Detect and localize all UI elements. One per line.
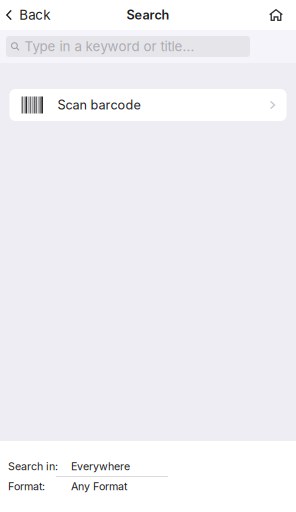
button[interactable]: Home (257, 0, 296, 30)
button[interactable]: Type in a keyword or title... (6, 36, 250, 57)
staticText: Search (126, 7, 169, 23)
staticText: Everywhere (71, 460, 130, 473)
staticText: Any Format (71, 480, 127, 493)
staticText: Search in: (8, 460, 58, 473)
staticText: Scan barcode (57, 97, 140, 113)
button[interactable]: Back (0, 0, 60, 30)
button[interactable]: Scan barcode (9, 89, 286, 121)
button[interactable]: Search in: (0, 460, 296, 479)
staticText: Back (19, 7, 50, 23)
staticText: Type in a keyword or title... (24, 38, 194, 54)
button[interactable]: Format: (0, 480, 296, 499)
staticText: Format: (8, 480, 45, 493)
